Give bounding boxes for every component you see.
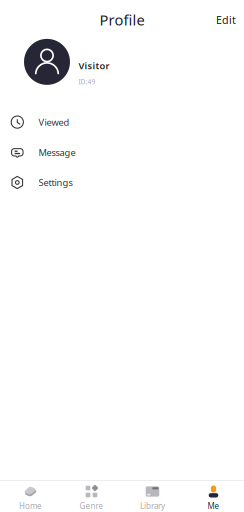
button[interactable]: Genre: [61, 481, 122, 512]
staticText: Settings: [39, 176, 73, 189]
staticText: Visitor: [78, 59, 109, 72]
staticText: Home: [19, 500, 42, 511]
button[interactable]: Me: [183, 481, 244, 512]
button[interactable]: Message: [0, 137, 244, 167]
staticText: Message: [39, 146, 76, 158]
button[interactable]: Home: [0, 481, 61, 512]
button[interactable]: Settings: [0, 167, 244, 198]
staticText: Library: [140, 500, 165, 511]
staticText: ID:49: [78, 77, 95, 86]
staticText: Edit: [216, 13, 236, 27]
button[interactable]: Viewed: [0, 107, 244, 137]
staticText: Viewed: [39, 116, 70, 128]
button[interactable]: Edit: [207, 6, 244, 34]
staticText: Profile: [99, 10, 144, 29]
button[interactable]: Library: [122, 481, 183, 512]
staticText: Me: [207, 500, 219, 511]
staticText: Genre: [79, 500, 103, 511]
